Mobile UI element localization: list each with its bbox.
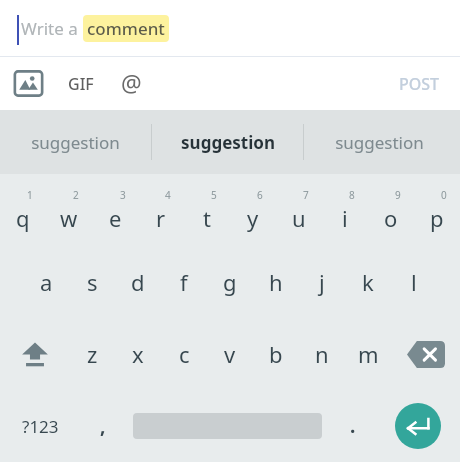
staticText: 8 <box>349 188 355 202</box>
staticText: o <box>384 203 398 233</box>
button[interactable]: g <box>207 246 253 318</box>
staticText: i <box>342 203 348 233</box>
staticText: k <box>362 267 374 297</box>
button[interactable]: b <box>253 318 299 390</box>
staticText: h <box>269 267 283 297</box>
button[interactable]: 6 <box>230 174 276 246</box>
staticText: l <box>411 267 417 297</box>
staticText: @ <box>121 67 142 97</box>
button[interactable]: c <box>161 318 207 390</box>
button[interactable]: 4 <box>138 174 184 246</box>
button[interactable]: . <box>330 390 375 462</box>
button[interactable]: d <box>115 246 161 318</box>
staticText: w <box>60 203 78 233</box>
button[interactable]: 3 <box>92 174 138 246</box>
staticText: 3 <box>120 188 126 202</box>
staticText: ?123 <box>22 415 59 438</box>
staticText: c <box>179 339 190 369</box>
button[interactable]: 7 <box>276 174 322 246</box>
staticText: , <box>100 413 106 439</box>
staticText: f <box>180 267 188 297</box>
button[interactable]: suggestion <box>152 110 303 174</box>
staticText: 0 <box>441 188 447 202</box>
button[interactable]: Shift <box>0 318 69 390</box>
button[interactable]: 1 <box>0 174 46 246</box>
button[interactable]: m <box>345 318 391 390</box>
staticText: b <box>269 339 283 369</box>
staticText: d <box>131 267 145 297</box>
staticText: POST <box>399 73 440 95</box>
staticText: 1 <box>27 188 33 202</box>
button[interactable]: GIF <box>68 73 94 95</box>
button[interactable]: , <box>80 390 125 462</box>
button[interactable]: 0 <box>414 174 460 246</box>
button[interactable]: v <box>207 318 253 390</box>
staticText: r <box>156 203 166 233</box>
button[interactable]: s <box>69 246 115 318</box>
staticText: 5 <box>211 188 217 202</box>
staticText: comment <box>87 17 165 40</box>
staticText: j <box>319 267 325 297</box>
staticText: suggestion <box>335 131 424 154</box>
button[interactable]: f <box>161 246 207 318</box>
staticText: . <box>350 413 356 439</box>
button[interactable]: 5 <box>184 174 230 246</box>
button[interactable]: n <box>299 318 345 390</box>
staticText: Write a <box>21 17 83 40</box>
staticText: a <box>40 267 53 297</box>
staticText: g <box>223 267 237 297</box>
button[interactable]: Backspace <box>391 318 460 390</box>
button[interactable]: k <box>345 246 391 318</box>
button[interactable]: a <box>23 246 69 318</box>
staticText: u <box>292 203 306 233</box>
button[interactable]: Insert image <box>13 68 44 99</box>
staticText: t <box>203 203 211 233</box>
staticText: n <box>315 339 329 369</box>
button[interactable]: j <box>299 246 345 318</box>
staticText: q <box>16 203 30 233</box>
button[interactable]: x <box>115 318 161 390</box>
staticText: z <box>87 339 98 369</box>
staticText: GIF <box>68 73 94 95</box>
staticText: 6 <box>257 188 263 202</box>
button[interactable]: 8 <box>322 174 368 246</box>
staticText: suggestion <box>31 131 120 154</box>
staticText: 7 <box>303 188 309 202</box>
staticText: 2 <box>73 188 79 202</box>
button[interactable]: l <box>391 246 437 318</box>
staticText: p <box>430 203 444 233</box>
button[interactable]: suggestion <box>304 110 455 174</box>
button[interactable]: 9 <box>368 174 414 246</box>
button[interactable]: POST <box>399 73 440 95</box>
button[interactable]: Mention <box>116 67 146 97</box>
staticText: 9 <box>395 188 401 202</box>
staticText: s <box>87 267 98 297</box>
button[interactable]: ?123 <box>0 390 80 462</box>
button[interactable]: z <box>69 318 115 390</box>
staticText: e <box>109 203 122 233</box>
staticText: v <box>224 339 236 369</box>
staticText: x <box>132 339 144 369</box>
staticText: y <box>247 203 259 233</box>
staticText: 4 <box>165 188 171 202</box>
button[interactable]: h <box>253 246 299 318</box>
button[interactable]: Enter <box>395 403 441 449</box>
button[interactable]: 2 <box>46 174 92 246</box>
staticText: m <box>358 339 379 369</box>
staticText: suggestion <box>181 131 275 154</box>
button[interactable]: suggestion <box>0 110 151 174</box>
